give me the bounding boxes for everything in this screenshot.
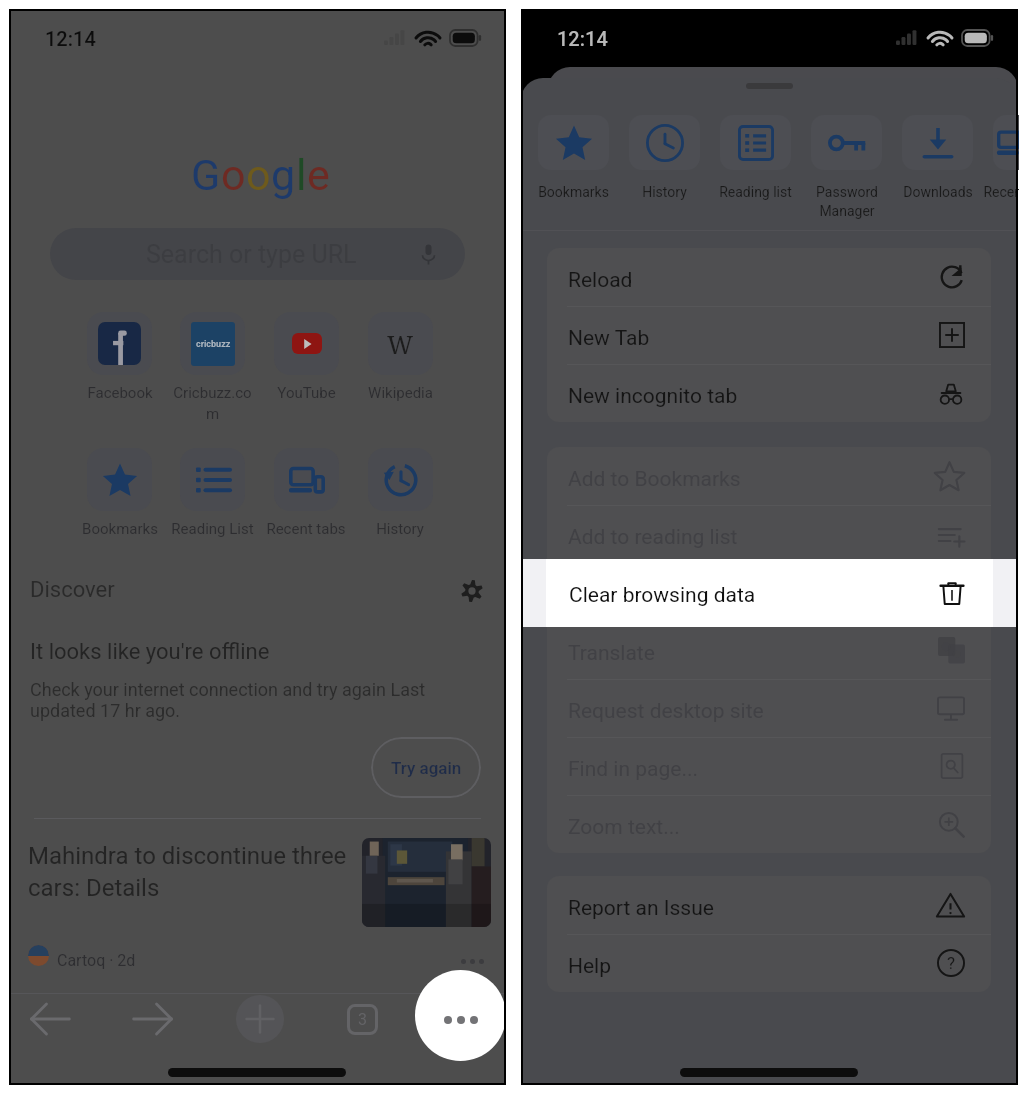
staticText: YouTube [277,384,336,402]
staticText: Translate [568,641,655,666]
staticText: 12:14 [45,27,96,50]
button[interactable]: Help [547,934,991,992]
staticText: Reading list [719,184,792,200]
button[interactable]: Translate [547,621,991,679]
staticText: Cartoq · 2d [57,951,136,970]
button[interactable]: Bookmarks [73,448,166,538]
staticText: Zoom text... [568,815,680,840]
staticText: Mahindra to discontinue three cars: Deta… [28,842,347,902]
staticText: ? [947,953,956,973]
staticText: Report an Issue [568,896,714,921]
staticText: W [387,327,414,361]
button[interactable]: Forward [125,991,180,1047]
button[interactable]: Recent [993,115,1019,200]
staticText: Request desktop site [568,699,764,724]
button[interactable]: Try again [371,737,481,798]
staticText: Bookmarks [82,520,158,538]
button[interactable]: YouTube [259,312,353,402]
staticText: Facebook [87,384,153,402]
staticText: Check your internet connection and try a… [30,679,426,721]
button[interactable]: Clear browsing data [547,563,991,621]
staticText: Help [568,954,612,979]
staticText: New incognito tab [568,384,738,409]
staticText: Recent tabs [266,520,346,538]
staticText: 3 [358,1010,367,1029]
staticText: cricbuzz [196,339,231,350]
button[interactable]: cricbuzz [166,312,259,422]
button[interactable]: Facebook [73,312,166,402]
staticText: g [271,150,296,200]
staticText: Recent [983,184,1019,200]
button[interactable]: Reading list [720,115,811,200]
staticText: o [246,150,271,200]
button[interactable]: New Tab [547,306,991,364]
staticText: e [307,150,330,200]
staticText: History [376,520,424,538]
button[interactable]: Password Manager [811,115,902,219]
button[interactable]: More options [415,970,506,1061]
button[interactable]: Report an Issue [547,876,991,934]
button[interactable]: Recent tabs [259,448,353,538]
staticText: Add to Bookmarks [568,467,741,492]
staticText: l [296,150,307,200]
staticText: Cricbuzz.co m [166,384,259,422]
staticText: It looks like you're offline [30,639,270,665]
staticText: Clear browsing data [568,583,755,608]
staticText: G [191,150,221,200]
staticText: Wikipedia [368,384,433,402]
button[interactable]: Tabs [335,991,390,1047]
staticText: Password Manager [816,184,878,219]
staticText: New Tab [568,326,650,351]
button[interactable]: Downloads [902,115,993,200]
button[interactable]: New incognito tab [547,364,991,422]
staticText: Reading List [171,520,254,538]
button[interactable]: Discover settings [453,572,491,610]
button[interactable]: Reading List [166,448,259,538]
staticText: Try again [391,758,462,778]
staticText: Bookmarks [538,184,609,200]
button[interactable]: Add to reading list [547,505,991,563]
button[interactable]: Back [22,991,77,1047]
button[interactable]: History [353,448,447,538]
button[interactable]: Reload [547,248,991,306]
button[interactable]: Clear browsing data [521,559,1018,627]
staticText: Add to reading list [568,525,738,550]
staticText: o [221,150,246,200]
staticText: Reload [568,268,633,293]
button[interactable]: Bookmarks [538,115,629,200]
staticText: Clear browsing data [569,583,756,608]
staticText: Downloads [903,184,973,200]
staticText: Find in page... [568,757,699,782]
staticText: 12:14 [557,27,608,50]
button[interactable]: History [629,115,720,200]
staticText: History [642,184,687,200]
button[interactable]: New tab [232,991,287,1047]
button[interactable]: Article options [461,950,495,972]
staticText: Discover [30,577,115,603]
button[interactable]: W [353,312,447,402]
